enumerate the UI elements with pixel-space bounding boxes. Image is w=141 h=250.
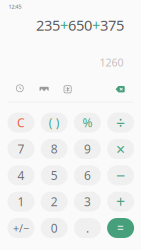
button[interactable]: Unit converter	[62, 83, 74, 95]
staticText: %	[82, 115, 92, 130]
button[interactable]: 7	[7, 139, 34, 159]
staticText: 650	[68, 15, 92, 35]
staticText: .	[86, 220, 89, 236]
staticText: 8	[51, 141, 58, 157]
staticText: ( )	[49, 115, 60, 130]
button[interactable]: 1	[7, 192, 34, 212]
staticText: +/−	[13, 221, 29, 235]
staticText: 12:45	[8, 3, 21, 10]
button[interactable]: 5	[41, 165, 68, 185]
staticText: +	[60, 15, 68, 35]
staticText: 5	[51, 167, 58, 183]
staticText: 2	[51, 194, 58, 210]
button[interactable]: 6	[74, 165, 101, 185]
button[interactable]: 0	[41, 218, 68, 238]
staticText: ÷	[116, 112, 125, 133]
staticText: 1	[17, 194, 24, 210]
button[interactable]: 4	[7, 165, 34, 185]
staticText: ×	[116, 138, 125, 159]
button[interactable]: %	[74, 113, 101, 133]
staticText: =	[117, 220, 124, 236]
staticText: 3	[84, 194, 91, 210]
staticText: 1260	[99, 55, 123, 69]
button[interactable]: ×	[107, 139, 134, 159]
button[interactable]: .	[74, 218, 101, 238]
staticText: C	[17, 115, 25, 130]
staticText: +	[92, 15, 100, 35]
button[interactable]: +	[107, 192, 134, 212]
staticText: 9	[84, 141, 91, 157]
button[interactable]: Keyboard	[38, 83, 50, 95]
staticText: +	[116, 191, 125, 212]
staticText: 375	[100, 15, 124, 35]
button[interactable]: ÷	[107, 113, 134, 133]
staticText: 6	[84, 167, 91, 183]
staticText: 235	[36, 15, 60, 35]
staticText: 4	[17, 167, 24, 183]
button[interactable]: History	[14, 82, 26, 94]
staticText: 0	[51, 220, 58, 236]
button[interactable]: 8	[41, 139, 68, 159]
button[interactable]: 2	[41, 192, 68, 212]
staticText: −	[116, 165, 125, 186]
button[interactable]: −	[107, 165, 134, 185]
button[interactable]: =	[107, 218, 134, 238]
button[interactable]: Delete	[114, 83, 126, 95]
button[interactable]: 3	[74, 192, 101, 212]
button[interactable]: +/−	[7, 218, 34, 238]
button[interactable]: C	[7, 113, 34, 133]
button[interactable]: ( )	[41, 113, 68, 133]
button[interactable]: 9	[74, 139, 101, 159]
staticText: 7	[17, 141, 24, 157]
